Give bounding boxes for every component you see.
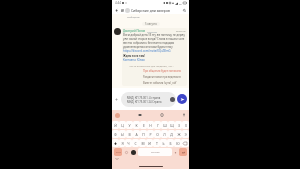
staticText: Э: [184, 132, 187, 137]
staticText: А: [135, 132, 138, 137]
staticText: Ж: [177, 132, 181, 137]
staticText: Ы: [121, 132, 124, 137]
button[interactable]: Emoji: [138, 113, 142, 117]
staticText: 5 августа: [145, 22, 157, 26]
button[interactable]: М: [139, 139, 146, 147]
button[interactable]: Е: [140, 121, 147, 129]
staticText: сообщение: [127, 16, 140, 19]
button[interactable]: А: [133, 130, 140, 138]
button[interactable]: Ь: [160, 139, 167, 147]
button[interactable]: Emoji: [170, 97, 175, 102]
button[interactable]: У: [126, 121, 133, 129]
staticText: МИД, КП 75.001. 4 страна: [127, 96, 161, 100]
button[interactable]: З: [175, 121, 182, 129]
button[interactable]: Л: [161, 130, 168, 138]
button[interactable]: Ж: [175, 130, 182, 138]
staticText: Щ: [170, 123, 174, 128]
staticText: З: [178, 123, 180, 128]
staticText: Русский: [151, 151, 160, 154]
staticText: Г: [157, 123, 159, 128]
button[interactable]: Gboard: [115, 113, 120, 118]
button[interactable]: Ы: [119, 130, 126, 138]
staticText: Ф: [114, 132, 117, 137]
staticText: У: [128, 123, 131, 128]
button[interactable]: Русский: [138, 148, 172, 156]
staticText: Вместе события (чуть)_соУ: [143, 81, 177, 85]
button[interactable]: Б: [167, 139, 174, 147]
staticText: Сибирские дни хакеров: [131, 8, 182, 12]
staticText: Т: [156, 141, 158, 146]
staticText: Ю: [176, 141, 180, 146]
staticText: Р: [149, 132, 152, 137]
staticText: Всем добрый день! В эту же пятницу не де…: [123, 33, 185, 49]
button[interactable]: Back: [114, 8, 119, 13]
button[interactable]: Г: [154, 121, 161, 129]
button[interactable]: Й: [112, 121, 119, 129]
staticText: МИД, КП 75.001 24 Страна: [127, 100, 162, 104]
staticText: П: [142, 132, 145, 137]
staticText: Н: [149, 123, 152, 128]
button[interactable]: Backspace: [181, 139, 189, 147]
staticText: Раздаем новое при ведении в: [143, 75, 181, 79]
staticText: Ждем всех там!: [123, 54, 146, 58]
button[interactable]: Р: [147, 130, 154, 138]
staticText: И: [148, 141, 151, 146]
button[interactable]: Н: [147, 121, 154, 129]
staticText: Ш: [163, 123, 167, 128]
button[interactable]: Send: [177, 94, 187, 104]
staticText: 4:44: [115, 1, 121, 5]
staticText: Е: [143, 123, 145, 128]
button[interactable]: П: [140, 130, 147, 138]
staticText: Л: [163, 132, 166, 137]
button[interactable]: В: [126, 130, 133, 138]
button[interactable]: Ц: [119, 121, 126, 129]
button[interactable]: Sticker: [125, 151, 128, 154]
button[interactable]: Clipboard: [160, 113, 164, 117]
staticText: Контакты: Юлия: [123, 58, 145, 62]
staticText: При общении буден написано: [143, 69, 182, 73]
button[interactable]: Ш: [161, 121, 168, 129]
button[interactable]: Д: [168, 130, 175, 138]
staticText: 58: [179, 2, 182, 5]
button[interactable]: С: [132, 139, 139, 147]
staticText: Саратов: [147, 30, 157, 33]
button[interactable]: ?123: [114, 148, 122, 156]
staticText: Ц: [121, 123, 124, 128]
staticText: что-то интересное для сведений, что...: [129, 64, 174, 67]
button[interactable]: Ч: [125, 139, 132, 147]
staticText: https://discord.com/invite/KQvZBmG: [123, 49, 171, 53]
button[interactable]: Enter: [179, 148, 187, 156]
button[interactable]: И: [146, 139, 153, 147]
button[interactable]: Shift: [112, 139, 119, 147]
staticText: Ь: [162, 141, 165, 146]
button[interactable]: Э: [182, 130, 189, 138]
staticText: Я: [121, 141, 124, 146]
button[interactable]: К: [133, 121, 140, 129]
button[interactable]: Ю: [174, 139, 181, 147]
button[interactable]: Щ: [168, 121, 175, 129]
button[interactable]: Mic: [182, 113, 186, 117]
button[interactable]: Я: [119, 139, 125, 147]
button[interactable]: Comma: [174, 151, 177, 154]
staticText: ?123: [116, 151, 121, 154]
staticText: О: [156, 132, 159, 137]
staticText: В: [128, 132, 131, 137]
staticText: Б: [169, 141, 172, 146]
button[interactable]: Т: [153, 139, 160, 147]
staticText: Ч: [127, 141, 130, 146]
button[interactable]: Attach: [114, 97, 119, 102]
button[interactable]: Hide keyboard: [115, 157, 119, 161]
staticText: Х: [185, 123, 187, 128]
button[interactable]: Search: [182, 8, 187, 13]
button[interactable]: О: [154, 130, 161, 138]
button[interactable]: Language: [131, 150, 136, 155]
staticText: М: [141, 141, 145, 146]
staticText: С: [134, 141, 137, 146]
staticText: К: [135, 123, 138, 128]
button[interactable]: Х: [182, 121, 189, 129]
staticText: Й: [114, 123, 117, 128]
staticText: Дмитрий Попов: [123, 29, 146, 33]
staticText: 09:52 Ср: [176, 30, 186, 33]
staticText: Д: [170, 132, 173, 137]
button[interactable]: Ф: [112, 130, 119, 138]
